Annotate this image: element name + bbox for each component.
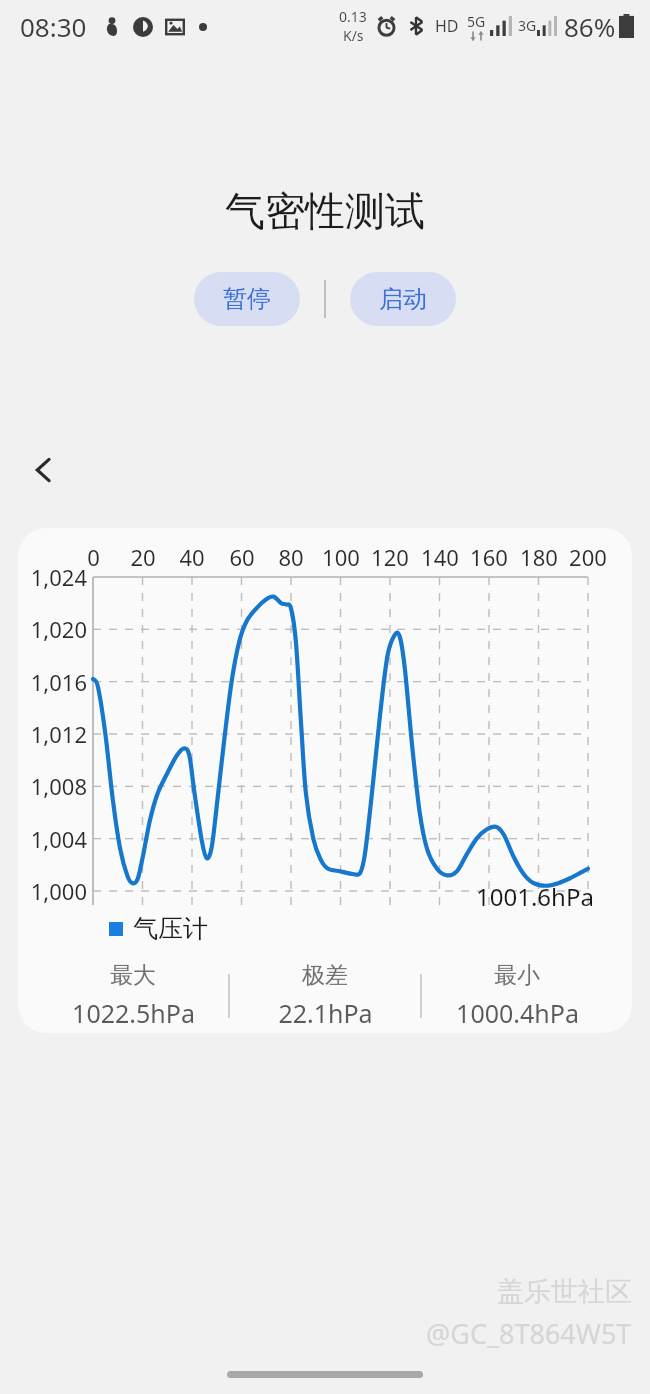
staticText: 暂停 (223, 284, 271, 314)
staticText: 200 (569, 542, 607, 572)
staticText: 1,008 (30, 771, 87, 801)
staticText: 1,004 (30, 824, 87, 854)
staticText: 86% (564, 9, 616, 44)
staticText: 最大 (110, 961, 156, 990)
staticText: 0.13 (339, 7, 367, 26)
button[interactable]: 暂停 (194, 272, 300, 326)
staticText: 1,016 (30, 667, 87, 697)
staticText: K/s (343, 26, 364, 45)
button[interactable]: 最小 (422, 961, 612, 1030)
staticText: 120 (371, 542, 409, 572)
staticText: @GC_8T864W5T (426, 1315, 632, 1352)
staticText: 40 (179, 542, 205, 572)
staticText: 1001.6hPa (476, 880, 594, 913)
staticText: 最小 (494, 961, 540, 990)
staticText: 20 (130, 542, 156, 572)
staticText: 极差 (302, 961, 348, 990)
button[interactable]: 极差 (230, 961, 420, 1030)
staticText: 启动 (379, 284, 427, 314)
staticText: 1,020 (30, 614, 87, 644)
staticText: 气密性测试 (225, 186, 425, 236)
staticText: 1,000 (30, 876, 87, 906)
staticText: 08:30 (20, 9, 87, 44)
staticText: 盖乐世社区 (497, 1275, 632, 1309)
staticText: 1000.4hPa (456, 996, 579, 1030)
staticText: 5G (467, 12, 486, 31)
staticText: 100 (322, 542, 360, 572)
staticText: 160 (470, 542, 508, 572)
staticText: 60 (229, 542, 255, 572)
staticText: HD (435, 15, 459, 37)
staticText: 3G (518, 16, 537, 35)
button[interactable]: Back (14, 440, 74, 500)
staticText: 气压计 (133, 913, 208, 944)
button[interactable]: 最大 (38, 961, 228, 1030)
staticText: 1022.5hPa (72, 996, 195, 1030)
staticText: 80 (278, 542, 304, 572)
staticText: 1,024 (30, 562, 87, 592)
button[interactable]: 0 (18, 528, 632, 1033)
staticText: 180 (520, 542, 558, 572)
staticText: 140 (421, 542, 459, 572)
button[interactable]: 启动 (350, 272, 456, 326)
staticText: 0 (87, 542, 100, 572)
staticText: 1,012 (30, 719, 87, 749)
staticText: 22.1hPa (278, 996, 373, 1030)
